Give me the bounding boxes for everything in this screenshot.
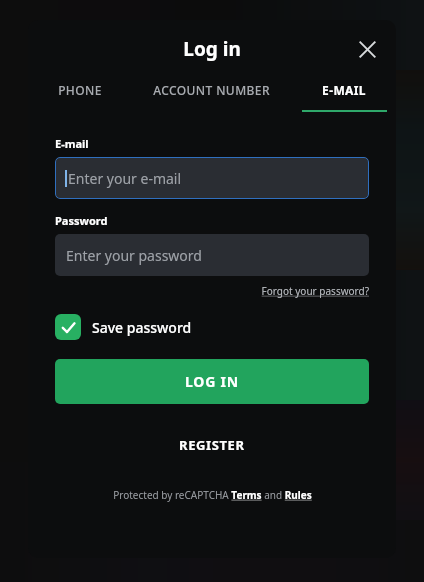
staticText: E-mail	[55, 136, 89, 151]
staticText: Log in	[28, 36, 396, 62]
button[interactable]: Enter your password	[55, 234, 369, 276]
button[interactable]: Forgot your password?	[261, 284, 369, 298]
staticText: ACCOUNT NUMBER	[153, 82, 270, 98]
staticText: Save password	[92, 318, 192, 337]
staticText: Enter your password	[66, 246, 202, 265]
staticText: REGISTER	[179, 436, 245, 454]
button[interactable]: Enter your e-mail	[55, 157, 369, 199]
button[interactable]: REGISTER	[55, 430, 369, 460]
button[interactable]: PHONE	[28, 78, 131, 120]
staticText: LOG IN	[185, 372, 240, 391]
button[interactable]: Save password	[55, 314, 192, 340]
button[interactable]: E-MAIL	[292, 78, 396, 120]
staticText: PHONE	[58, 82, 102, 98]
staticText: E-MAIL	[322, 82, 366, 98]
button[interactable]: ACCOUNT NUMBER	[131, 78, 292, 120]
staticText: Protected by reCAPTCHA Terms and Rules	[113, 488, 312, 502]
staticText: Password	[55, 213, 108, 228]
staticText: Enter your e-mail	[68, 169, 182, 188]
button[interactable]: LOG IN	[55, 359, 369, 404]
button[interactable]: Close	[348, 30, 386, 68]
